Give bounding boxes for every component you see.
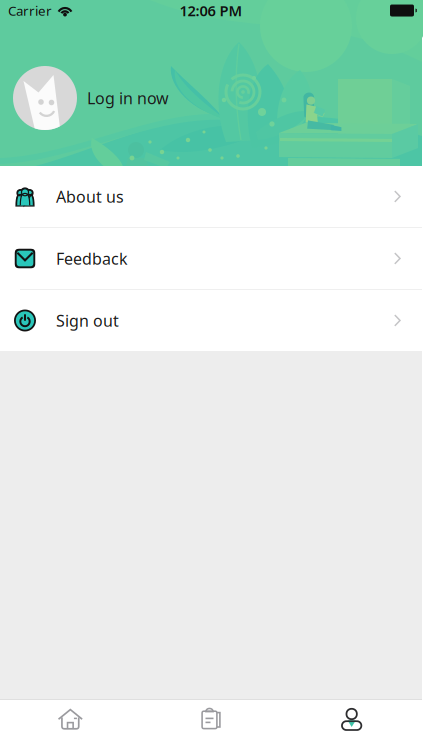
- staticText: Feedback: [56, 248, 128, 269]
- button[interactable]: About us: [0, 166, 422, 227]
- staticText: About us: [56, 186, 124, 207]
- staticText: Sign out: [56, 310, 119, 331]
- button[interactable]: Profile: [281, 700, 422, 750]
- staticText: Log in now: [87, 87, 169, 109]
- button[interactable]: Sign out: [0, 290, 422, 351]
- button[interactable]: Orders: [141, 700, 281, 750]
- button[interactable]: Home: [0, 700, 141, 750]
- staticText: Carrier: [8, 2, 52, 19]
- button[interactable]: Log in now: [77, 77, 183, 119]
- staticText: 12:06 PM: [179, 1, 242, 20]
- button[interactable]: Feedback: [0, 228, 422, 289]
